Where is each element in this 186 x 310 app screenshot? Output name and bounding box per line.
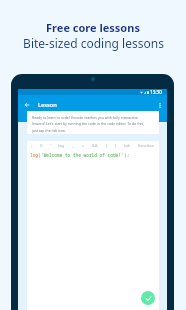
staticText: }: [115, 143, 117, 149]
staticText: log(: [30, 152, 41, 158]
button[interactable]: More options: [155, 100, 165, 110]
staticText: &&: [92, 143, 99, 149]
staticText: );: [124, 152, 130, 158]
button[interactable]: function: [137, 143, 156, 149]
staticText: ': [50, 143, 51, 149]
staticText: Bite-sized coding lessons: [23, 35, 164, 51]
staticText: Free core lessons: [46, 20, 140, 35]
staticText: tab: [124, 143, 131, 149]
button[interactable]: }: [114, 143, 118, 149]
button[interactable]: Run code: [141, 291, 155, 305]
staticText: function: [138, 143, 155, 149]
button[interactable]: log: [57, 143, 66, 149]
staticText: =: [82, 143, 85, 149]
button[interactable]: tab: [123, 143, 132, 149]
staticText: Ready to learn to code? Encode teaches y…: [32, 115, 146, 133]
staticText: log: [58, 143, 65, 149]
staticText: Lesson: [38, 101, 57, 109]
button[interactable]: {: [105, 143, 109, 149]
button[interactable]: &&: [91, 143, 100, 149]
button[interactable]: Back: [22, 100, 32, 110]
staticText: ;: [31, 143, 33, 149]
staticText: _: [72, 143, 74, 149]
button[interactable]: ': [49, 143, 52, 149]
staticText: 13:30: [150, 89, 162, 95]
button[interactable]: (): [39, 143, 44, 149]
staticText: {: [106, 143, 108, 149]
button[interactable]: =: [81, 143, 86, 149]
button[interactable]: ;: [30, 143, 34, 149]
staticText: (): [40, 143, 43, 149]
button[interactable]: _: [71, 143, 75, 149]
staticText: 'Welcome to the world of code!': [41, 152, 124, 158]
